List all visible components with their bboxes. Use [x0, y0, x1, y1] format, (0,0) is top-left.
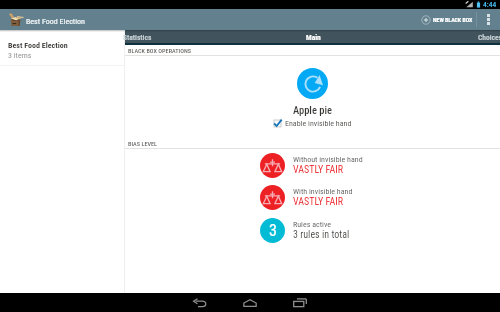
button[interactable]: Refresh — [297, 68, 328, 99]
staticText: 3 rules in total — [293, 229, 350, 241]
button[interactable]: With invisible hand — [125, 181, 500, 214]
button[interactable]: Home — [239, 293, 261, 312]
button[interactable]: Choices — [409, 30, 500, 43]
staticText: Main — [306, 33, 321, 42]
staticText: VASTLY FAIR — [293, 164, 344, 176]
button[interactable]: 3 — [125, 214, 500, 247]
staticText: Enable invisible hand — [285, 119, 352, 128]
staticText: Best Food Election — [26, 17, 85, 26]
staticText: Statistics — [123, 33, 152, 42]
button[interactable]: Best Food Election — [0, 32, 125, 65]
button[interactable]: Main — [233, 30, 394, 43]
staticText: Rules active — [293, 220, 332, 229]
button[interactable]: Back — [189, 293, 211, 312]
button[interactable]: Recent apps — [289, 293, 311, 312]
button[interactable]: More options — [477, 9, 500, 30]
button[interactable]: Statistics — [57, 30, 218, 43]
staticText: Choices — [478, 33, 500, 42]
staticText: 4:44 — [483, 0, 497, 9]
staticText: 3 — [269, 221, 277, 240]
button[interactable]: Without invisible hand — [125, 149, 500, 182]
staticText: Best Food Election — [8, 41, 68, 50]
staticText: BIAS LEVEL — [128, 140, 158, 147]
staticText: With invisible hand — [293, 187, 353, 196]
button[interactable]: Enable invisible hand — [274, 119, 352, 128]
button[interactable]: NEW BLACK BOX — [417, 9, 476, 30]
staticText: Without invisible hand — [293, 155, 363, 164]
staticText: VASTLY FAIR — [293, 196, 344, 208]
staticText: 3 items — [8, 51, 32, 60]
staticText: NEW BLACK BOX — [433, 17, 473, 24]
staticText: Apple pie — [293, 104, 333, 116]
staticText: BLACK BOX OPERATIONS — [128, 47, 192, 54]
